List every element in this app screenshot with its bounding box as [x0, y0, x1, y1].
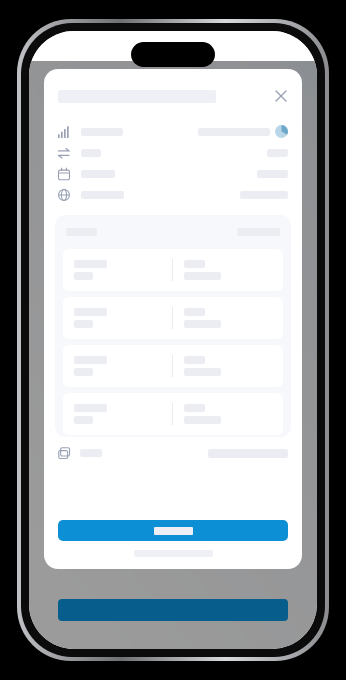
button[interactable]: [58, 121, 288, 142]
button[interactable]: [58, 163, 288, 184]
button[interactable]: [63, 249, 283, 291]
button[interactable]: Close: [270, 85, 292, 107]
button[interactable]: [63, 297, 283, 339]
button[interactable]: [58, 520, 288, 541]
button[interactable]: [58, 142, 288, 163]
button[interactable]: [63, 345, 283, 387]
button[interactable]: [63, 393, 283, 435]
button[interactable]: [58, 184, 288, 205]
button[interactable]: [58, 599, 288, 621]
